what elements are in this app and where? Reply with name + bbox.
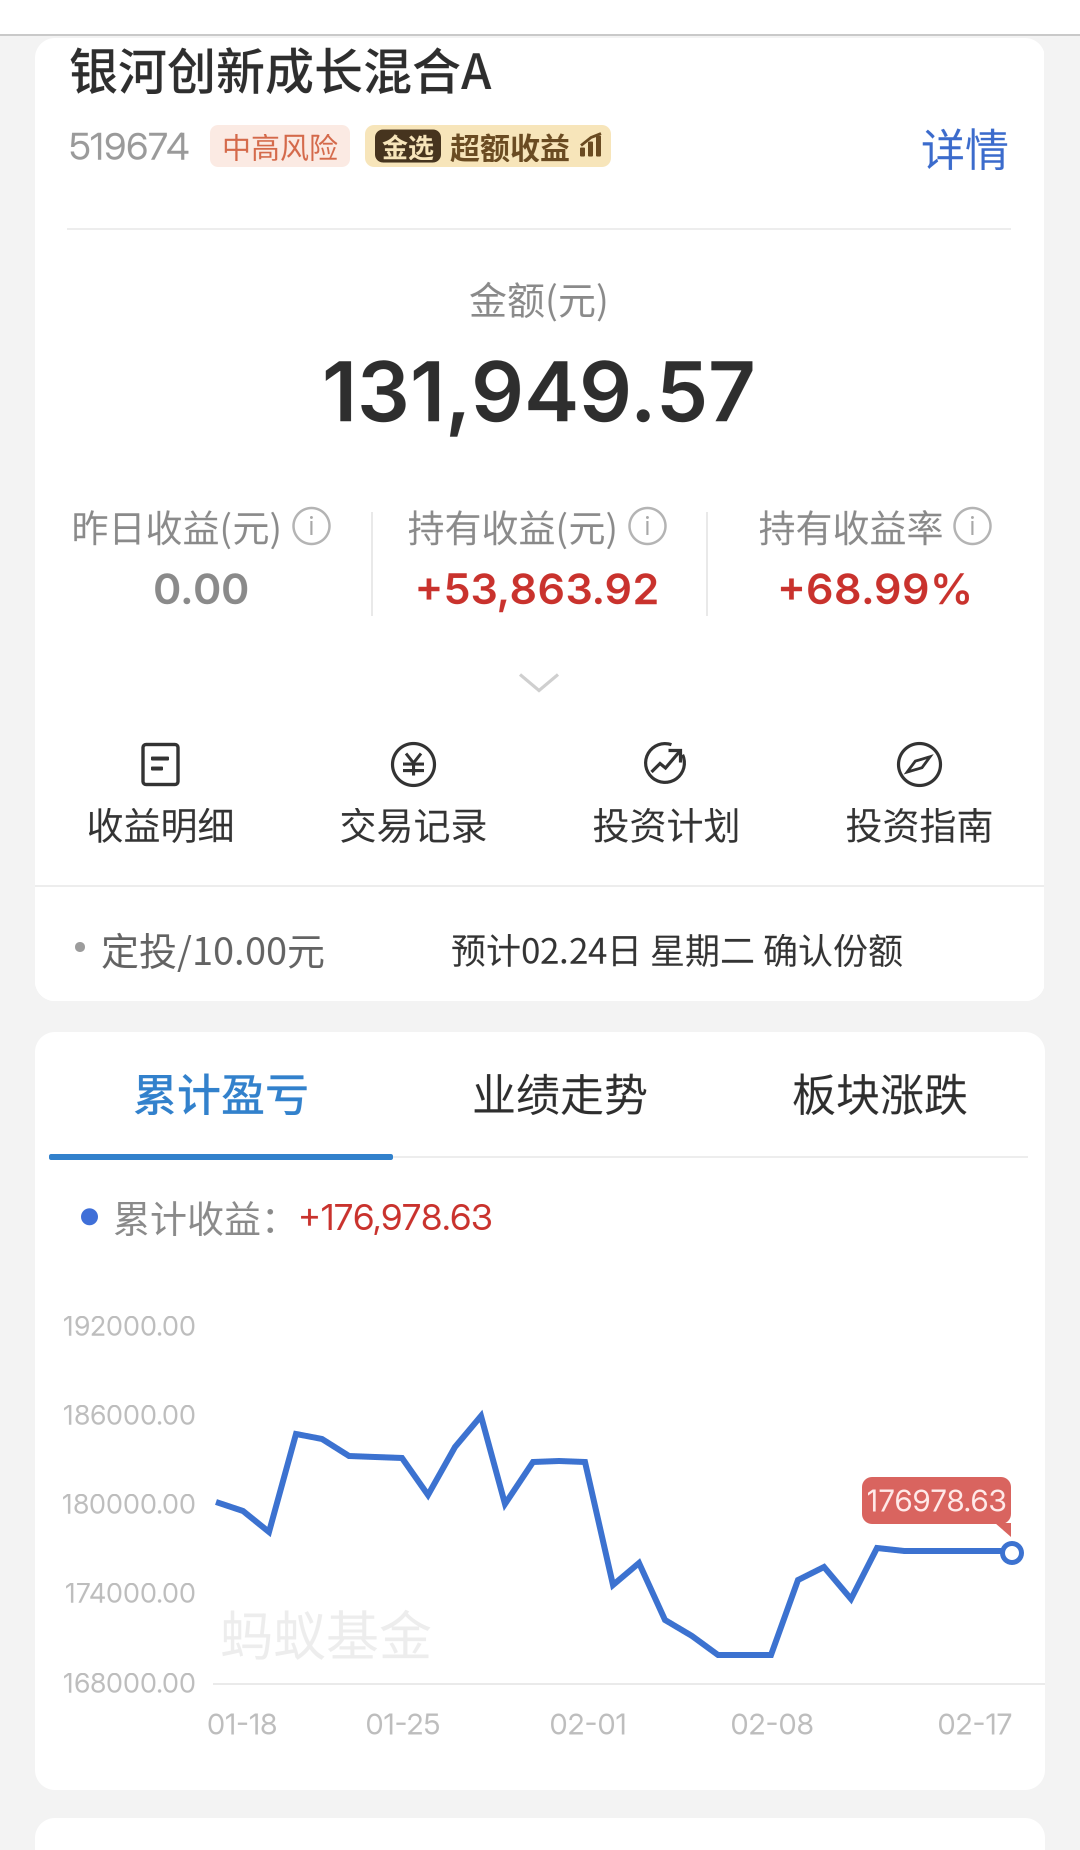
staticText: 01-25 xyxy=(365,1706,440,1742)
staticText: 昨日收益(元) xyxy=(71,499,282,553)
button[interactable]: 详情 xyxy=(869,110,1009,184)
staticText: i xyxy=(969,511,975,541)
staticText: 累计盈亏 xyxy=(133,1060,309,1124)
button[interactable]: 交易记录 xyxy=(287,742,540,847)
staticText: 02-08 xyxy=(730,1706,813,1742)
staticText: 蚂蚁基金 xyxy=(220,1594,432,1671)
staticText: 交易记录 xyxy=(339,797,487,850)
staticText: 金额(元) xyxy=(469,270,609,325)
staticText: 板块涨跌 xyxy=(792,1060,968,1124)
staticText: 投资计划 xyxy=(592,797,740,850)
staticText: 131,949.57 xyxy=(322,341,756,441)
staticText: 定投/10.00元 xyxy=(101,921,325,976)
staticText: 投资指南 xyxy=(845,797,993,850)
button[interactable]: 展开收益详情 xyxy=(449,653,629,713)
staticText: 详情 xyxy=(921,115,1009,179)
staticText: i xyxy=(308,511,314,541)
button[interactable]: 定投/10.00元 xyxy=(34,887,1044,1001)
staticText: 519674 xyxy=(69,123,190,169)
button[interactable]: 投资指南 xyxy=(793,742,1046,847)
staticText: 180000.00 xyxy=(62,1488,196,1520)
staticText: 186000.00 xyxy=(63,1399,196,1431)
staticText: i xyxy=(644,511,650,541)
staticText: 银河创新成长混合A xyxy=(69,32,491,103)
staticText: 174000.00 xyxy=(65,1577,196,1609)
staticText: +53,863.92 xyxy=(414,562,659,614)
staticText: 02-17 xyxy=(937,1706,1012,1742)
staticText: 业绩走势 xyxy=(472,1060,648,1124)
staticText: 超额收益 xyxy=(450,124,570,168)
staticText: +176,978.63 xyxy=(298,1195,493,1239)
button[interactable]: 投资计划 xyxy=(540,742,793,847)
staticText: 累计收益： xyxy=(113,1190,298,1244)
staticText: 192000.00 xyxy=(63,1310,196,1342)
staticText: 01-18 xyxy=(207,1706,277,1742)
button[interactable]: 累计盈亏 xyxy=(49,1042,393,1142)
staticText: +68.99% xyxy=(777,562,973,614)
button[interactable]: 收益明细 xyxy=(34,742,287,847)
staticText: 02-01 xyxy=(549,1706,626,1742)
button[interactable]: 业绩走势 xyxy=(410,1042,710,1142)
staticText: 168000.00 xyxy=(63,1667,196,1699)
staticText: 176978.63 xyxy=(866,1482,1006,1519)
staticText: 金选 xyxy=(382,127,434,165)
staticText: 持有收益(元) xyxy=(407,499,618,553)
staticText: 持有收益率 xyxy=(758,499,943,553)
staticText: 0.00 xyxy=(153,562,249,614)
staticText: 预计02.24日 星期二 确认份额 xyxy=(451,923,903,974)
staticText: 中高风险 xyxy=(222,125,338,167)
button[interactable]: 板块涨跌 xyxy=(730,1042,1030,1142)
staticText: 收益明细 xyxy=(86,797,234,850)
